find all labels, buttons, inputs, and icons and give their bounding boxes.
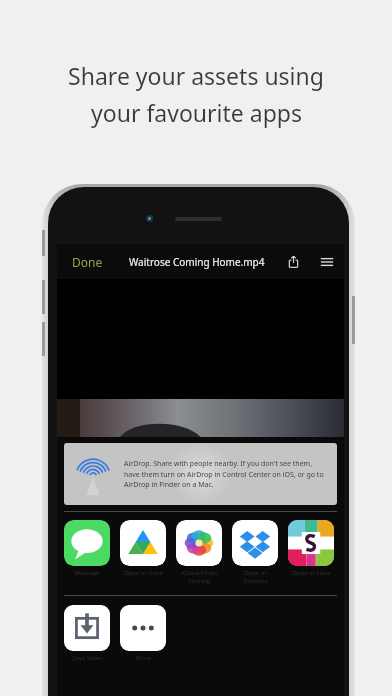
button[interactable]: iCloud Photo Sharing: [176, 520, 222, 585]
staticText: AirDrop. Share with people nearby. If yo…: [124, 459, 327, 489]
staticText: Done: [72, 254, 103, 270]
button[interactable]: Open in Dropbox: [232, 520, 278, 585]
button[interactable]: More: [120, 605, 166, 662]
button[interactable]: Menu: [310, 244, 344, 279]
staticText: Open in Drive: [124, 569, 163, 577]
staticText: Waitrose Coming Home.mp4: [129, 255, 265, 269]
staticText: More: [136, 654, 151, 662]
button[interactable]: Share: [276, 244, 310, 279]
staticText: Share your assets using: [68, 60, 324, 91]
staticText: your favourite apps: [91, 97, 302, 128]
staticText: Open in Slack: [292, 569, 331, 577]
staticText: Save Video: [72, 654, 103, 662]
button[interactable]: Open in Drive: [120, 520, 166, 577]
button[interactable]: Open in Slack: [288, 520, 334, 577]
button[interactable]: AirDrop. Share with people nearby. If yo…: [64, 443, 337, 505]
staticText: Open in Dropbox: [243, 569, 268, 585]
staticText: Message: [74, 569, 100, 577]
button[interactable]: Message: [64, 520, 110, 577]
button[interactable]: Done: [57, 244, 117, 279]
button[interactable]: Save Video: [64, 605, 110, 662]
staticText: iCloud Photo Sharing: [181, 569, 218, 585]
